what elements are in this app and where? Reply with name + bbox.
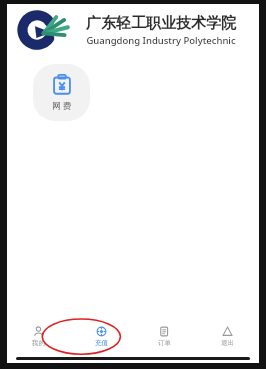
button[interactable]: 订单 [133, 319, 196, 353]
button[interactable]: 退出 [196, 319, 259, 353]
staticText: 我的 [32, 339, 45, 347]
staticText: Guangdong Industry Polytechnic [86, 34, 236, 47]
staticText: 充值 [95, 339, 108, 347]
staticText: 订单 [158, 339, 171, 347]
button[interactable]: 我的 [7, 319, 70, 353]
staticText: 退出 [221, 339, 234, 347]
button[interactable]: 网 费 [33, 64, 90, 121]
button[interactable]: 充值 [70, 319, 133, 353]
staticText: 网 费 [52, 100, 72, 112]
staticText: 广东轻工职业技术学院 [86, 14, 236, 33]
